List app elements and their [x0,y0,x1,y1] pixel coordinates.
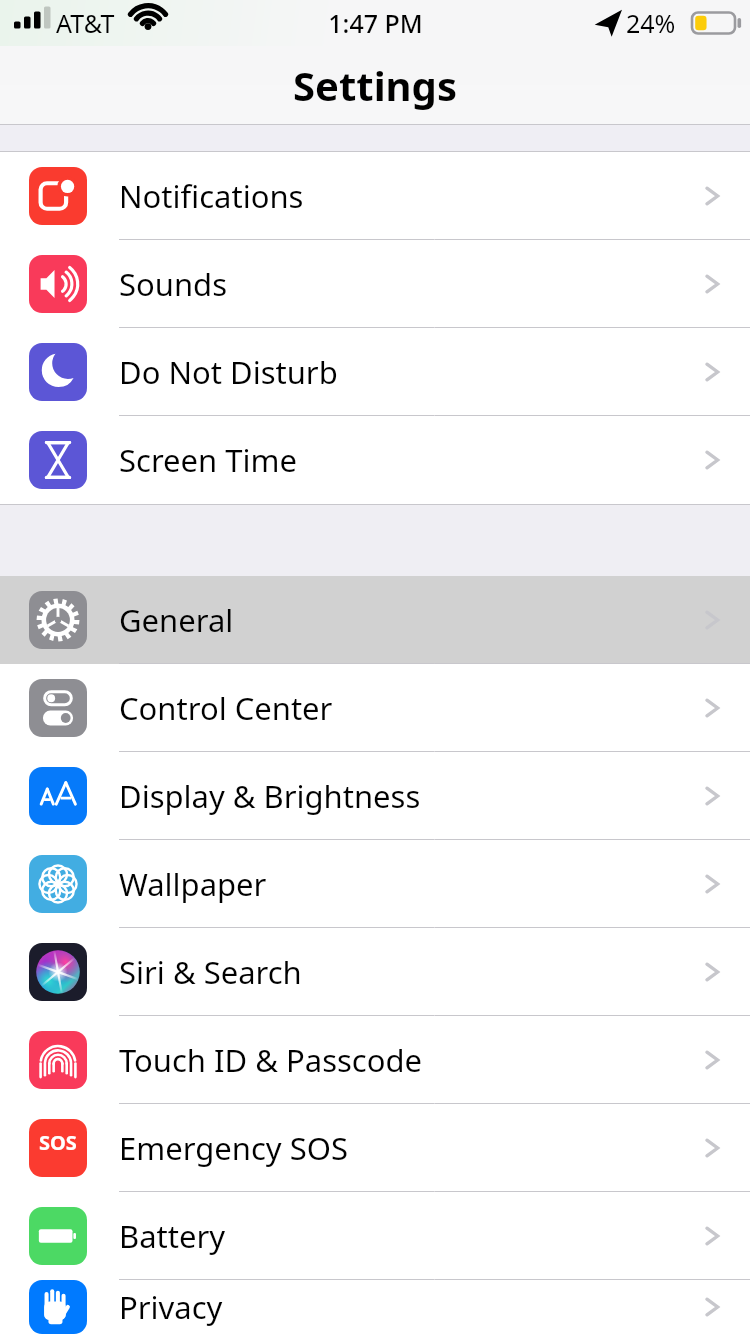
button[interactable]: Privacy [0,1280,750,1334]
button[interactable]: Notifications [0,152,750,240]
staticText: Settings [293,58,457,112]
staticText: Siri & Search [119,951,302,993]
staticText: 24% [626,6,676,40]
button[interactable]: Control Center [0,664,750,752]
button[interactable]: Siri & Search [0,928,750,1016]
staticText: Control Center [119,687,333,729]
staticText: Display & Brightness [119,775,421,817]
staticText: General [119,599,234,641]
button[interactable]: Battery [0,1192,750,1280]
staticText: Screen Time [119,439,297,481]
staticText: Notifications [119,175,304,217]
button[interactable]: Do Not Disturb [0,328,750,416]
staticText: 1:47 PM [328,6,423,40]
button[interactable]: Touch ID & Passcode [0,1016,750,1104]
staticText: Emergency SOS [119,1127,348,1169]
staticText: Sounds [119,263,228,305]
staticText: Do Not Disturb [119,351,338,393]
staticText: SOS [39,1129,77,1156]
button[interactable]: Wallpaper [0,840,750,928]
button[interactable]: Sounds [0,240,750,328]
staticText: Wallpaper [119,863,267,905]
staticText: AT&T [56,6,115,40]
staticText: Battery [119,1215,226,1257]
button[interactable]: Emergency SOS [0,1104,750,1192]
button[interactable]: Display & Brightness [0,752,750,840]
button[interactable]: General [0,576,750,664]
staticText: Privacy [119,1286,223,1328]
staticText: Touch ID & Passcode [119,1039,423,1081]
button[interactable]: Screen Time [0,416,750,504]
